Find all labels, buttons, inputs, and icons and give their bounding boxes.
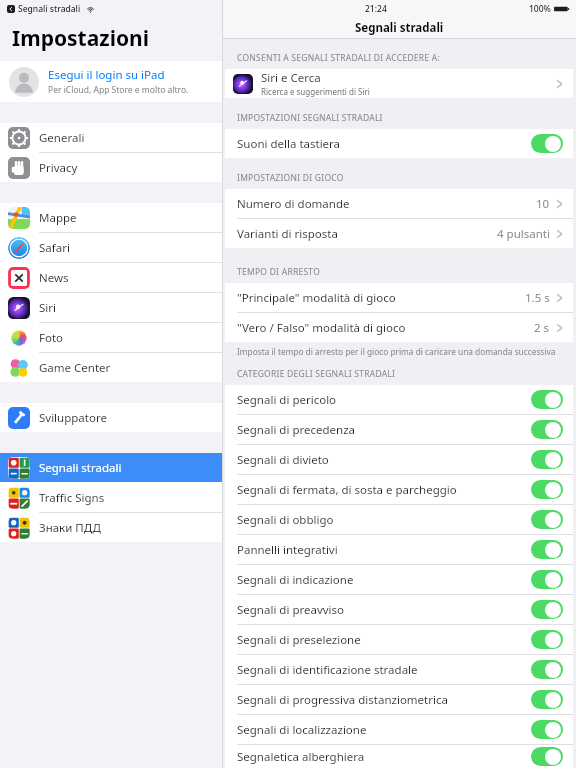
button[interactable] [531,510,563,529]
staticText: "Vero / Falso" modalità di gioco [237,320,534,336]
staticText: Siri e Cerca [261,70,321,86]
staticText: Segnali di indicazione [237,572,531,588]
button[interactable]: Segnali di preavviso [225,595,573,624]
button[interactable]: "Principale" modalità di gioco [225,283,573,312]
staticText: Segnali di divieto [237,452,531,468]
staticText: Segnali di obbligo [237,512,531,528]
button[interactable]: Esegui il login su iPad [0,61,222,102]
staticText: Varianti di risposta [237,226,497,242]
staticText: Imposta il tempo di arresto per il gioco… [237,346,556,357]
button[interactable]: Segnali di divieto [225,445,573,474]
staticText: Segnali di fermata, di sosta e parcheggi… [237,482,531,498]
button[interactable]: Game Center [0,353,222,382]
staticText: CATEGORIE DEGLI SEGNALI STRADALI [237,368,396,380]
staticText: Segnali di preselezione [237,632,531,648]
button[interactable]: Siri e Cerca [225,69,573,98]
staticText: News [39,270,69,286]
button[interactable] [531,690,563,709]
staticText: Segnali di preavviso [237,602,531,618]
staticText: 2 s [534,320,550,336]
staticText: Privacy [39,160,78,176]
staticText: Traffic Signs [39,490,105,506]
button[interactable]: Varianti di risposta [225,219,573,248]
staticText: Segnali di progressiva distanziometrica [237,692,531,708]
button[interactable]: Safari [0,233,222,262]
staticText: IMPOSTAZIONI SEGNALI STRADALI [237,112,383,124]
staticText: TEMPO DI ARRESTO [237,266,321,278]
staticText: 4 pulsanti [497,226,550,242]
button[interactable]: Segnali di progressiva distanziometrica [225,685,573,714]
button[interactable]: Generali [0,123,222,152]
button[interactable] [531,600,563,619]
button[interactable]: Segnali stradali [0,453,222,482]
staticText: Mappe [39,210,77,226]
button[interactable]: Segnali di localizzazione [225,715,573,744]
staticText: Pannelli integrativi [237,542,531,558]
staticText: Segnali stradali [355,20,444,36]
staticText: Sviluppatore [39,410,107,426]
button[interactable] [531,720,563,739]
button[interactable]: Segnali di fermata, di sosta e parcheggi… [225,475,573,504]
button[interactable] [531,660,563,679]
button[interactable]: Segnali di indicazione [225,565,573,594]
button[interactable]: Segnali di pericolo [225,385,573,414]
button[interactable]: Segnali di obbligo [225,505,573,534]
button[interactable] [531,390,563,409]
staticText: 21:24 [365,3,387,15]
button[interactable]: Sviluppatore [0,403,222,432]
staticText: Esegui il login su iPad [48,67,165,83]
staticText: 100% [529,3,551,15]
button[interactable]: Segnali di preselezione [225,625,573,654]
button[interactable]: Segnali di precedenza [225,415,573,444]
staticText: Знаки ПДД [39,520,101,536]
button[interactable]: Pannelli integrativi [225,535,573,564]
staticText: Impostazioni [12,24,149,53]
staticText: Segnaletica alberghiera [237,749,531,765]
staticText: "Principale" modalità di gioco [237,290,525,306]
button[interactable] [531,480,563,499]
staticText: Per iCloud, App Store e molto altro. [48,84,189,96]
staticText: Ricerca e suggerimenti di Siri [261,86,370,97]
staticText: Segnali di identificazione stradale [237,662,531,678]
button[interactable] [531,420,563,439]
button[interactable] [531,540,563,559]
button[interactable] [531,570,563,589]
staticText: Safari [39,240,70,256]
staticText: Segnali di pericolo [237,392,531,408]
staticText: Suoni della tastiera [237,136,531,152]
staticText: IMPOSTAZIONI DI GIOCO [237,172,344,184]
button[interactable]: "Vero / Falso" modalità di gioco [225,313,573,342]
button[interactable]: Mappe [0,203,222,232]
button[interactable]: Siri [0,293,222,322]
staticText: CONSENTI A SEGNALI STRADALI DI ACCEDERE … [237,52,440,64]
button[interactable] [531,450,563,469]
staticText: Segnali stradali [39,460,122,476]
staticText: Game Center [39,360,111,376]
button[interactable]: Знаки ПДД [0,513,222,542]
staticText: Foto [39,330,64,346]
button[interactable] [531,134,563,153]
staticText: Segnali stradali [18,3,81,15]
button[interactable] [531,630,563,649]
staticText: Segnali di localizzazione [237,722,531,738]
button[interactable]: News [0,263,222,292]
button[interactable]: Traffic Signs [0,483,222,512]
button[interactable]: Numero di domande [225,189,573,218]
button[interactable]: Segnaletica alberghiera [225,745,573,768]
staticText: 10 [536,196,550,212]
button[interactable]: Privacy [0,153,222,182]
button[interactable]: Foto [0,323,222,352]
button[interactable] [531,747,563,766]
staticText: Numero di domande [237,196,536,212]
button[interactable]: Suoni della tastiera [225,129,573,158]
button[interactable]: Segnali di identificazione stradale [225,655,573,684]
staticText: Siri [39,300,56,316]
staticText: 1.5 s [525,290,550,306]
staticText: Segnali di precedenza [237,422,531,438]
staticText: Generali [39,130,85,146]
